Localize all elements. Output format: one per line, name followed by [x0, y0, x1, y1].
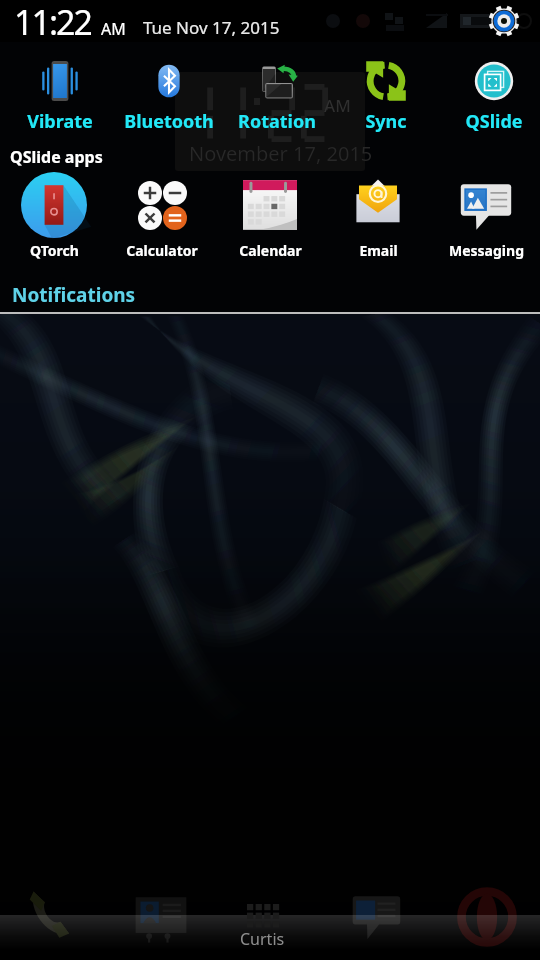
staticText: Calculator [126, 241, 198, 260]
button[interactable]: Calendar [216, 172, 324, 260]
button[interactable]: Calculator [108, 172, 216, 260]
staticText: Email [359, 241, 398, 260]
staticText: 11:22 [14, 0, 91, 41]
button[interactable]: Vibrate [6, 58, 114, 134]
button[interactable]: Browser [458, 888, 516, 946]
staticText: Calendar [239, 241, 302, 260]
staticText: Tue Nov 17, 2015 [143, 16, 280, 39]
button[interactable]: Email [324, 172, 432, 260]
button[interactable]: Sync [332, 58, 440, 134]
staticText: Rotation [223, 109, 331, 134]
staticText: QSlide apps [10, 146, 103, 168]
button[interactable]: Apps [240, 904, 300, 948]
button[interactable]: Phone [27, 886, 83, 942]
button[interactable]: Messaging [350, 892, 406, 948]
button[interactable]: Messaging [432, 172, 540, 260]
staticText: Bluetooth [115, 109, 223, 134]
staticText: QTorch [30, 241, 79, 260]
button[interactable]: QSlide [440, 58, 540, 134]
staticText: Curtis [240, 928, 285, 948]
staticText: November 17, 2015 [189, 140, 373, 167]
staticText: Notifications [12, 282, 136, 308]
staticText: AM [324, 94, 351, 117]
staticText: QSlide [440, 109, 540, 134]
staticText: Vibrate [6, 109, 114, 134]
staticText: Messaging [449, 241, 524, 260]
staticText: Sync [332, 109, 440, 134]
staticText: AM [101, 18, 126, 40]
button[interactable]: Bluetooth [115, 58, 223, 134]
button[interactable]: Rotation [223, 58, 331, 134]
button[interactable]: QTorch [0, 172, 108, 260]
button[interactable]: Contacts [134, 894, 190, 950]
button[interactable]: Settings [489, 6, 519, 36]
